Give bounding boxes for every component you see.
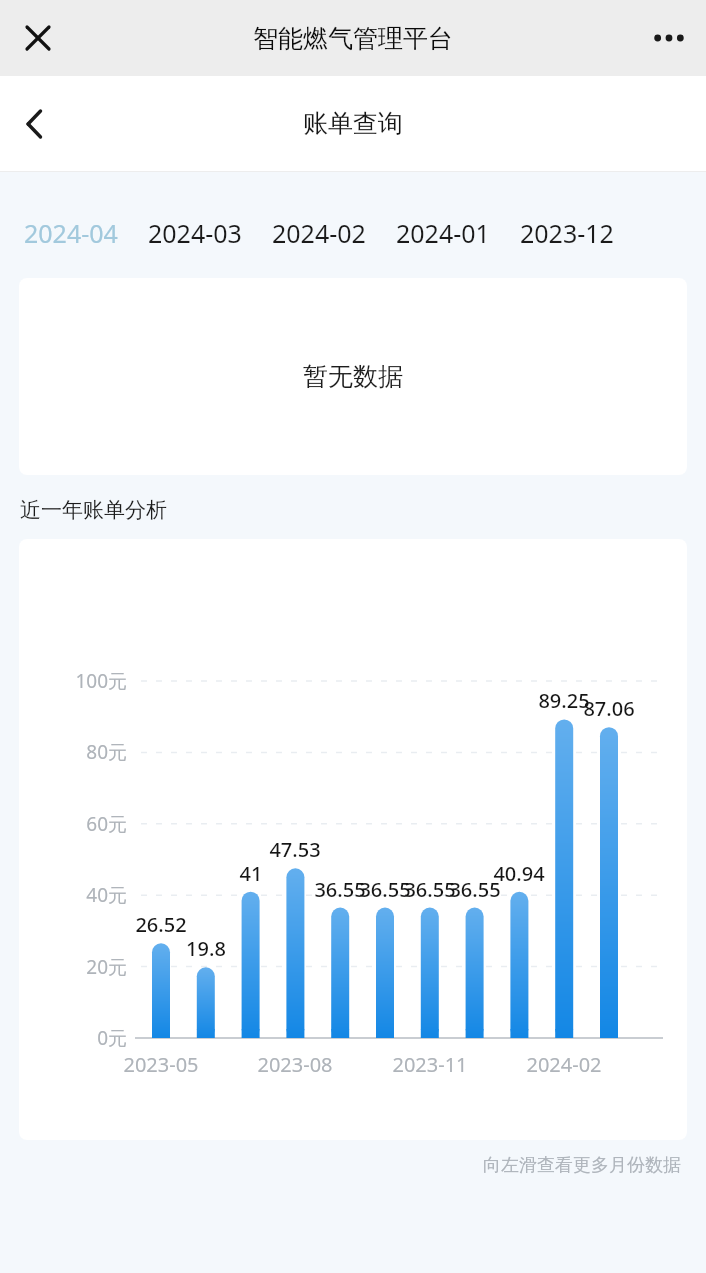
staticText: 87.06: [569, 695, 649, 722]
staticText: 60元: [19, 811, 127, 837]
button[interactable]: 2024-01: [394, 210, 492, 256]
staticText: 36.55: [345, 876, 425, 903]
button[interactable]: Back: [14, 98, 66, 150]
staticText: 40.94: [479, 860, 559, 887]
staticText: 2023-05: [101, 1051, 221, 1078]
staticText: 100元: [19, 668, 127, 694]
staticText: 向左滑查看更多月份数据: [0, 1154, 681, 1177]
staticText: 2024-02: [272, 216, 366, 250]
staticText: 20元: [19, 954, 127, 980]
staticText: 账单查询: [303, 108, 403, 139]
staticText: 36.55: [390, 876, 470, 903]
staticText: 40元: [19, 882, 127, 908]
staticText: 2023-12: [520, 216, 614, 250]
staticText: 36.55: [435, 876, 515, 903]
staticText: 2024-04: [24, 216, 118, 250]
button[interactable]: 2024-02: [270, 210, 368, 256]
staticText: 0元: [19, 1025, 127, 1051]
staticText: 2024-02: [504, 1051, 624, 1078]
staticText: 2023-11: [370, 1051, 490, 1078]
staticText: 80元: [19, 739, 127, 765]
button[interactable]: 2024-03: [146, 210, 244, 256]
button[interactable]: More options: [644, 14, 692, 62]
staticText: 89.25: [524, 687, 604, 714]
staticText: 暂无数据: [303, 361, 403, 392]
staticText: 2024-03: [148, 216, 242, 250]
staticText: 19.8: [166, 935, 246, 962]
staticText: 智能燃气管理平台: [253, 23, 453, 54]
staticText: 26.52: [121, 911, 201, 938]
button[interactable]: 2024-04: [22, 210, 120, 256]
staticText: 2023-08: [235, 1051, 355, 1078]
staticText: 2024-01: [396, 216, 490, 250]
staticText: 近一年账单分析: [20, 497, 167, 523]
staticText: 41: [211, 860, 291, 887]
button[interactable]: Close: [14, 14, 62, 62]
button[interactable]: 2023-12: [518, 210, 616, 256]
staticText: 47.53: [255, 836, 335, 863]
staticText: 36.55: [300, 876, 380, 903]
